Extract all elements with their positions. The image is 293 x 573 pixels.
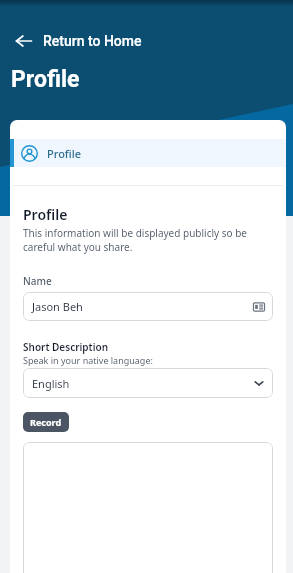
button[interactable]: Return to Home [13, 29, 145, 53]
button[interactable]: Profile [10, 139, 286, 167]
button[interactable]: Record [23, 412, 69, 432]
staticText: Return to Home [43, 33, 142, 49]
button[interactable]: Jason Beh [23, 292, 273, 321]
staticText: Profile [23, 205, 68, 224]
staticText: This information will be displayed publi… [23, 226, 273, 254]
staticText: Jason Beh [32, 299, 83, 314]
button[interactable]: English [23, 368, 273, 398]
staticText: Name [23, 274, 52, 288]
button[interactable] [23, 442, 273, 573]
staticText: Record [30, 416, 62, 428]
staticText: Speak in your native language: [23, 354, 153, 366]
staticText: Short Description [23, 340, 109, 354]
staticText: Profile [11, 66, 80, 93]
staticText: Profile [47, 146, 82, 161]
staticText: English [32, 376, 70, 391]
